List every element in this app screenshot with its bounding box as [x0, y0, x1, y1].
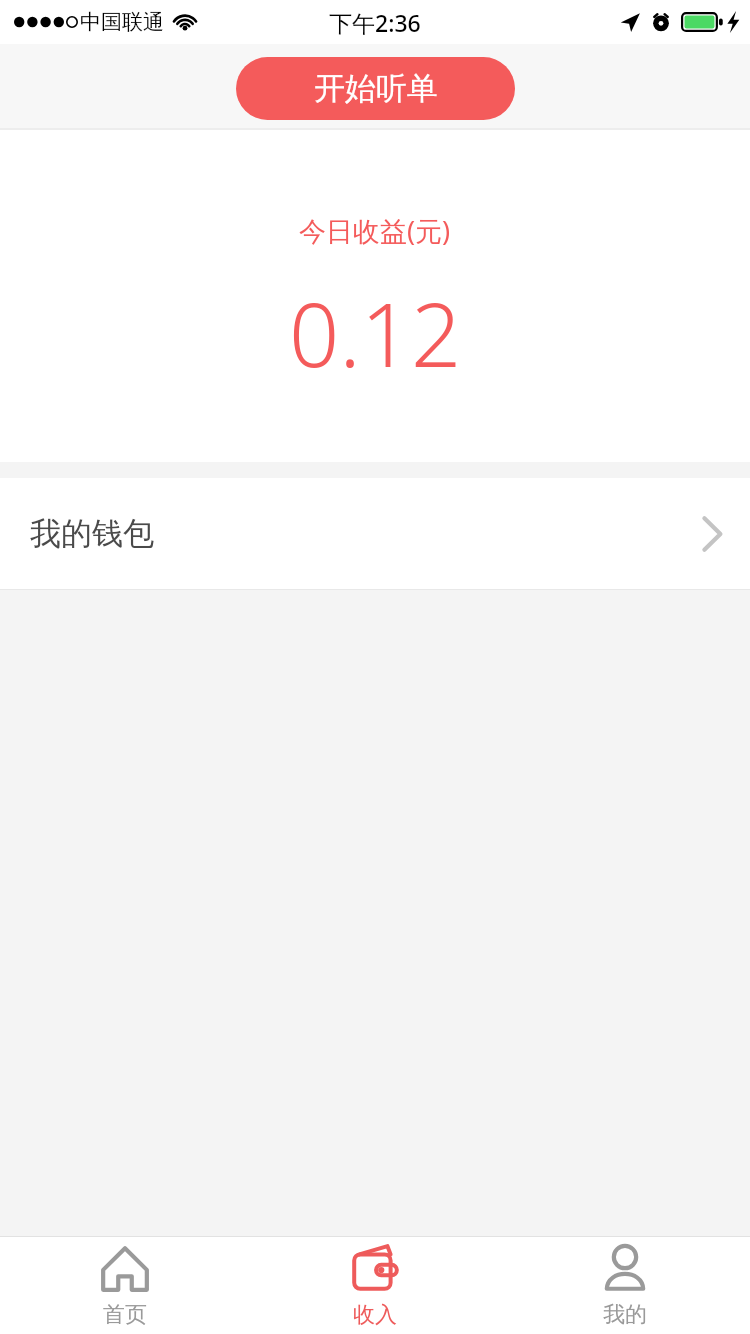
staticText: 0.12: [289, 273, 462, 393]
other: 首页: [99, 1243, 151, 1295]
staticText: 首页: [103, 1301, 147, 1329]
button[interactable]: 我的钱包: [0, 478, 750, 589]
button[interactable]: 我的: [500, 1237, 750, 1334]
other: 我的: [599, 1243, 651, 1295]
staticText: 开始听单: [314, 69, 438, 108]
button[interactable]: 收入: [250, 1237, 500, 1334]
staticText: 今日收益(元): [299, 212, 451, 249]
button[interactable]: 首页: [0, 1237, 250, 1334]
other: 收入: [349, 1243, 401, 1295]
staticText: 中国联通: [80, 9, 164, 35]
button[interactable]: 开始听单: [236, 57, 515, 120]
staticText: 收入: [353, 1301, 397, 1329]
staticText: 我的钱包: [30, 514, 154, 553]
staticText: 我的: [603, 1301, 647, 1329]
staticText: 下午2:36: [329, 7, 421, 38]
